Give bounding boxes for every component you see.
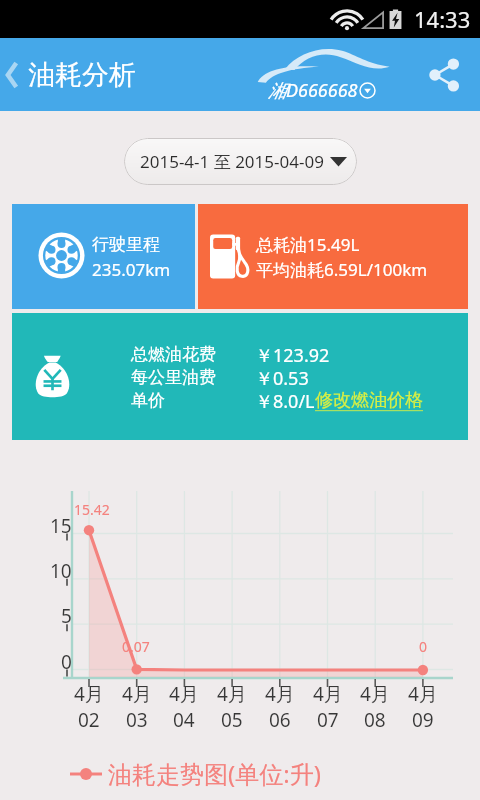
staticText: 总燃油花费: [131, 344, 216, 365]
staticText: ￥123.92: [255, 343, 330, 366]
button[interactable]: 2015-4-1 至 2015-04-09: [124, 138, 357, 185]
staticText: 平均油耗6.59L/100km: [256, 258, 428, 281]
staticText: 0.07: [122, 637, 150, 656]
staticText: 05: [221, 707, 243, 733]
staticText: 4月: [169, 681, 199, 707]
staticText: 4月: [217, 681, 247, 707]
button[interactable]: 总燃油花费: [12, 313, 468, 440]
staticText: 4月: [408, 681, 438, 707]
staticText: 15: [50, 513, 72, 535]
staticText: 06: [269, 707, 291, 733]
staticText: 10: [50, 558, 72, 580]
button[interactable]: Back: [0, 50, 28, 100]
staticText: 单价: [131, 390, 165, 411]
staticText: 4月: [122, 681, 152, 707]
staticText: 4月: [265, 681, 295, 707]
staticText: 4月: [313, 681, 343, 707]
staticText: 0: [61, 649, 72, 671]
staticText: 14:33: [414, 4, 471, 34]
staticText: ￥8.0/L: [255, 389, 315, 412]
staticText: 油耗分析: [28, 58, 136, 92]
staticText: 5: [61, 603, 72, 625]
button[interactable]: 行驶里程: [12, 204, 195, 309]
staticText: 总耗油15.49L: [256, 233, 360, 256]
button[interactable]: 湘D666668: [255, 42, 391, 103]
staticText: 02: [78, 707, 100, 733]
staticText: 07: [317, 707, 339, 733]
staticText: 4月: [74, 681, 104, 707]
button[interactable]: 修改燃油价格: [315, 389, 423, 412]
staticText: 09: [412, 707, 434, 733]
button[interactable]: Share: [424, 54, 466, 96]
staticText: 03: [126, 707, 148, 733]
staticText: ￥0.53: [255, 366, 309, 389]
staticText: 行驶里程: [92, 234, 160, 255]
staticText: 15.42: [74, 500, 110, 519]
staticText: 4月: [360, 681, 390, 707]
staticText: 油耗走势图(单位:升): [108, 757, 321, 790]
staticText: 每公里油费: [131, 367, 216, 388]
staticText: 08: [364, 707, 386, 733]
staticText: 04: [173, 707, 195, 733]
staticText: 湘D666668: [268, 78, 358, 103]
button[interactable]: 总耗油15.49L: [198, 204, 468, 309]
staticText: 0: [419, 637, 428, 656]
staticText: 2015-4-1 至 2015-04-09: [140, 150, 324, 173]
staticText: 235.07km: [92, 258, 171, 281]
